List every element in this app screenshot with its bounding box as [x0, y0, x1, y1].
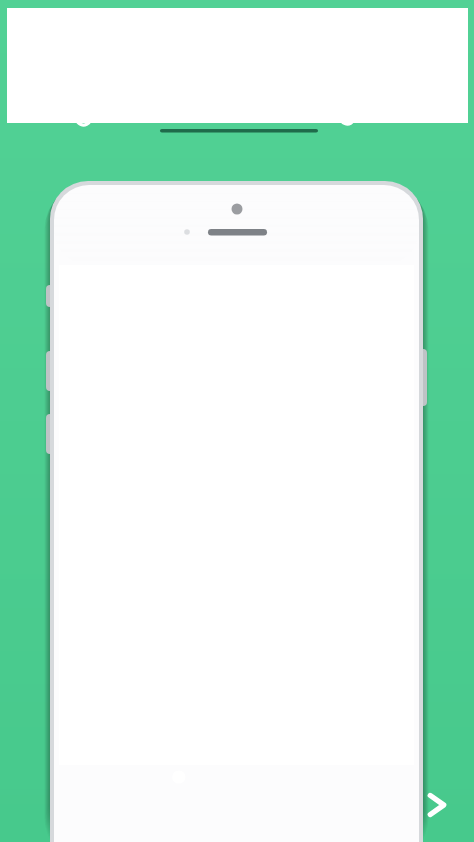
button[interactable]: Next — [400, 768, 474, 842]
